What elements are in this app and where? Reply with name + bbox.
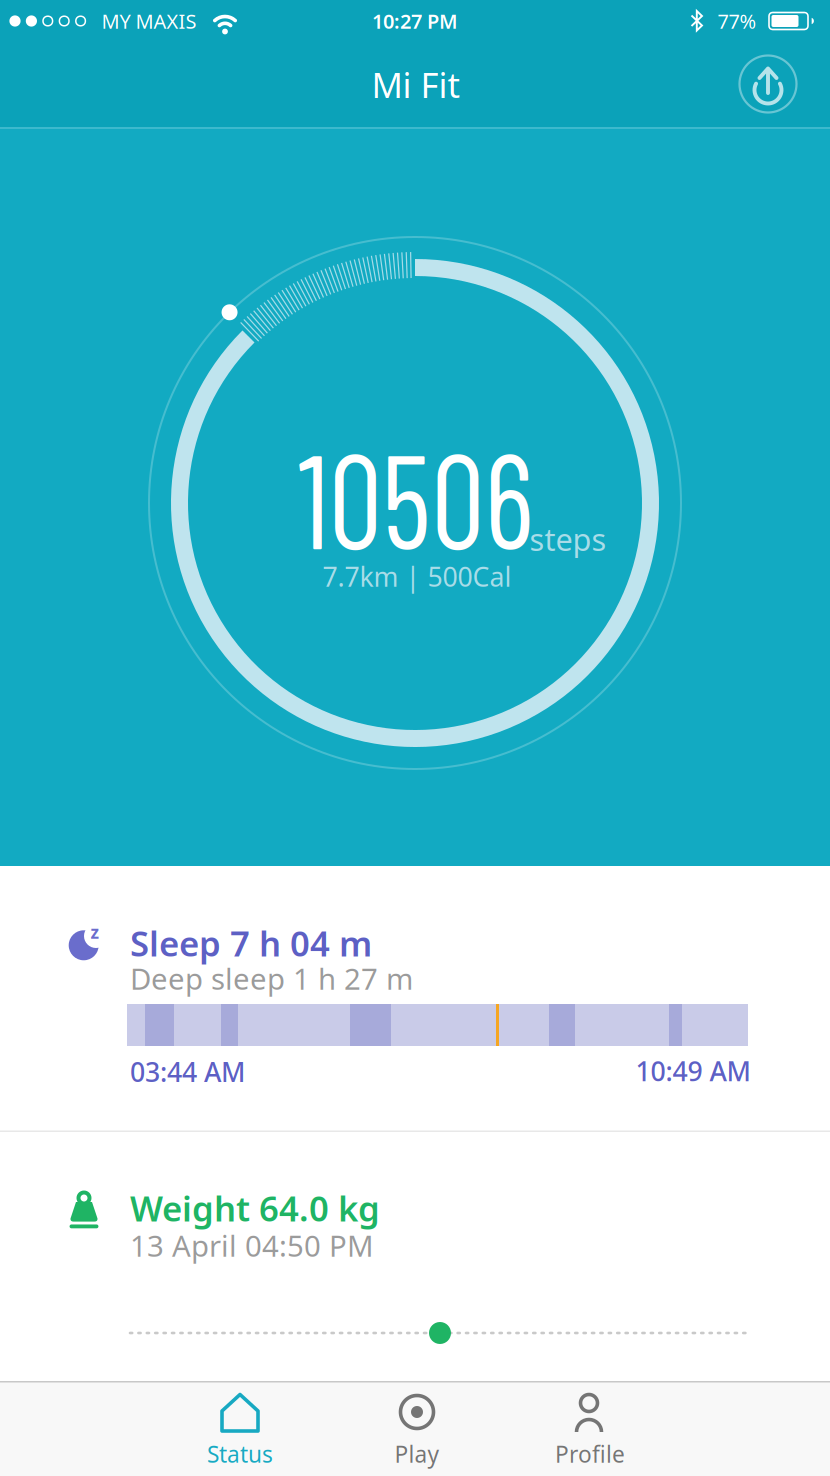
staticText: Weight 64.0 kg: [130, 1185, 380, 1231]
staticText: z: [90, 920, 99, 943]
button[interactable]: z: [0, 866, 830, 1132]
button[interactable]: Profile: [0, 1381, 175, 1476]
staticText: Play: [394, 1439, 439, 1469]
staticText: MY MAXIS: [101, 8, 196, 34]
staticText: 77%: [717, 8, 756, 34]
staticText: 7.7km | 500Cal: [322, 559, 511, 594]
staticText: 03:44 AM: [130, 1054, 245, 1089]
staticText: 13 April 04:50 PM: [130, 1226, 374, 1265]
staticText: Mi Fit: [371, 61, 460, 107]
staticText: Status: [207, 1439, 273, 1469]
staticText: Deep sleep 1 h 27 m: [130, 959, 413, 998]
staticText: steps: [529, 519, 606, 559]
staticText: Sleep 7 h 04 m: [130, 920, 372, 966]
staticText: 10:49 AM: [635, 1053, 750, 1089]
staticText: 10:27 PM: [372, 8, 458, 34]
staticText: 10506: [285, 416, 547, 576]
staticText: Profile: [555, 1439, 625, 1469]
button[interactable]: Weight 64.0 kg: [0, 1132, 830, 1381]
button[interactable]: Status: [0, 1381, 175, 1476]
button[interactable]: Play: [0, 1381, 175, 1476]
